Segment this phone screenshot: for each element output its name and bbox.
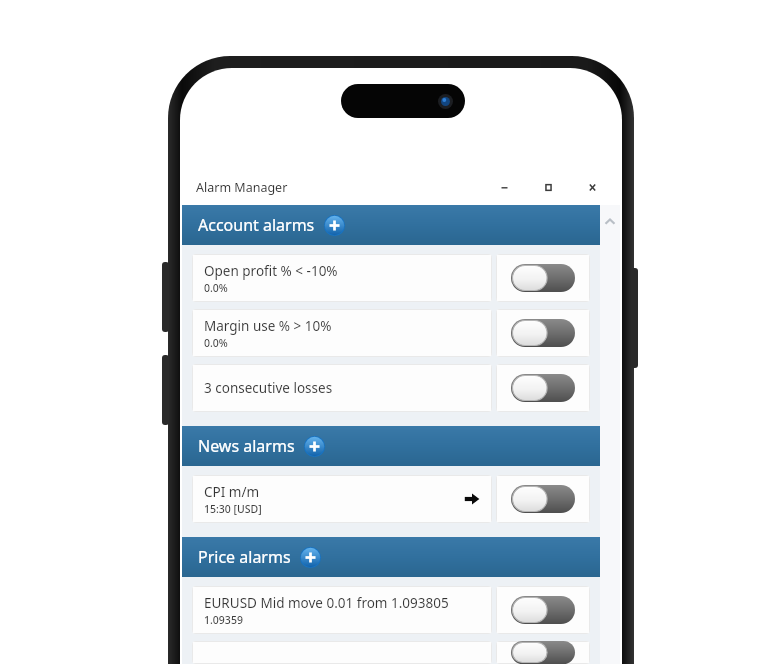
staticText: EURUSD Mid move 0.01 from 1.093805 <box>204 594 449 612</box>
staticText: CPI m/m <box>204 483 260 501</box>
button[interactable]: Toggle alarm <box>496 364 590 412</box>
button[interactable]: Add News alarms <box>304 436 325 457</box>
staticText: Alarm Manager <box>196 179 288 196</box>
button[interactable]: Open details <box>464 491 480 507</box>
staticText: 0.0% <box>204 336 228 350</box>
button[interactable]: EURUSD Mid move 0.01 from 1.093805 <box>192 586 590 634</box>
button[interactable]: Toggle alarm <box>496 254 590 302</box>
button[interactable]: Toggle alarm <box>496 641 590 664</box>
button[interactable]: Close <box>570 170 614 205</box>
button[interactable]: News alarms <box>182 426 600 466</box>
staticText: 0.0% <box>204 281 228 295</box>
staticText: Price alarms <box>198 546 291 568</box>
button[interactable]: Open profit % < -10% <box>192 254 590 302</box>
button[interactable]: Add Price alarms <box>300 547 321 568</box>
staticText: Open profit % < -10% <box>204 262 338 280</box>
button[interactable]: Toggle alarm <box>496 475 590 523</box>
button[interactable]: Toggle alarm <box>192 641 590 664</box>
button[interactable]: Toggle alarm <box>496 586 590 634</box>
button[interactable]: Add Account alarms <box>324 215 345 236</box>
button[interactable]: Minimize <box>482 170 526 205</box>
button[interactable]: Toggle alarm <box>496 309 590 357</box>
button[interactable]: Margin use % > 10% <box>192 309 590 357</box>
button[interactable]: Price alarms <box>182 537 600 577</box>
button[interactable]: Maximize <box>526 170 570 205</box>
staticText: Margin use % > 10% <box>204 317 332 335</box>
staticText: 1.09359 <box>204 613 243 627</box>
staticText: News alarms <box>198 435 295 457</box>
button[interactable]: CPI m/m <box>192 475 590 523</box>
button[interactable]: 3 consecutive losses <box>192 364 590 412</box>
button[interactable]: Scroll up <box>601 213 619 231</box>
button[interactable]: Account alarms <box>182 205 600 245</box>
staticText: Account alarms <box>198 214 315 236</box>
staticText: 15:30 [USD] <box>204 502 262 516</box>
staticText: 3 consecutive losses <box>204 379 333 397</box>
